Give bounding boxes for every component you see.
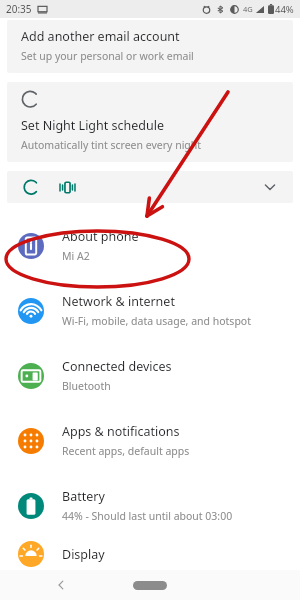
staticText: Display	[62, 546, 105, 563]
button[interactable]: Add another email account	[7, 20, 293, 73]
staticText: About phone	[62, 228, 139, 245]
staticText: Connected devices	[62, 358, 172, 375]
button[interactable]: Connected devices	[0, 343, 300, 408]
staticText: Apps & notifications	[62, 423, 180, 440]
staticText: Network & internet	[62, 293, 175, 310]
staticText: Bluetooth	[62, 379, 111, 393]
button[interactable]: Network & internet	[0, 278, 300, 343]
button[interactable]: Back	[50, 574, 72, 596]
button[interactable]: Vibrate toggle	[55, 175, 79, 199]
button[interactable]: Night light toggle	[7, 171, 293, 203]
button[interactable]: Expand suggestions	[258, 175, 282, 199]
button[interactable]: Home	[133, 581, 167, 590]
button[interactable]: Set Night Light schedule	[7, 82, 293, 162]
staticText: 20:35	[6, 2, 32, 16]
button[interactable]: About phone	[0, 213, 300, 278]
staticText: Set up your personal or work email	[21, 49, 194, 63]
staticText: Battery	[62, 488, 105, 505]
staticText: 44%	[275, 3, 294, 16]
button[interactable]: Battery	[0, 473, 300, 538]
button[interactable]: Display	[0, 538, 300, 570]
staticText: Mi A2	[62, 249, 90, 263]
staticText: 44% - Should last until about 03:00	[62, 509, 233, 523]
button[interactable]: Night light toggle	[18, 175, 42, 199]
staticText: Set Night Light schedule	[21, 117, 164, 134]
staticText: 4G	[243, 4, 253, 14]
staticText: Recent apps, default apps	[62, 444, 190, 458]
staticText: Automatically tint screen every night	[21, 138, 202, 152]
staticText: Wi-Fi, mobile, data usage, and hotspot	[62, 314, 251, 328]
button[interactable]: Apps & notifications	[0, 408, 300, 473]
staticText: Add another email account	[21, 28, 180, 45]
